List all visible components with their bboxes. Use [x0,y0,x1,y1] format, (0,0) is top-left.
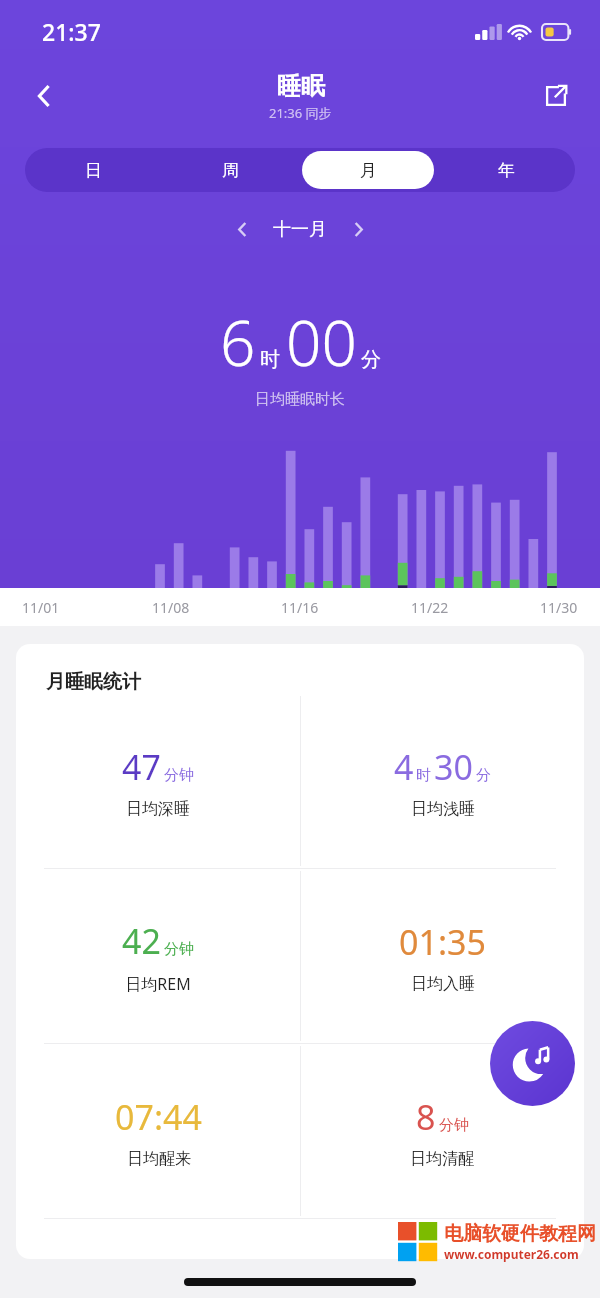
button[interactable]: 01:35 [300,869,584,1043]
button[interactable]: 日 [28,151,159,189]
staticText: 11/30 [540,598,578,617]
staticText: 21:36 同步 [269,104,332,122]
button[interactable]: 42 [16,869,300,1043]
button[interactable]: 月 [302,151,434,189]
staticText: 01:35 [399,919,486,965]
staticText: 11/01 [22,598,60,617]
staticText: 分钟 [439,1116,469,1135]
staticText: 日 [85,160,102,181]
button[interactable]: 07:44 [16,1044,300,1218]
button[interactable]: Sleep music [490,1021,575,1106]
staticText: 月睡眠统计 [46,670,141,694]
button[interactable]: Share [532,72,580,120]
staticText: 月 [360,160,377,181]
staticText: 分 [476,766,491,785]
staticText: 47 [122,744,161,790]
staticText: 十一月 [273,218,327,241]
staticText: 时 [416,766,431,785]
staticText: 日均入睡 [411,974,475,994]
staticText: 时 [260,347,280,372]
button[interactable]: Previous month [223,210,261,248]
button[interactable]: 年 [440,151,572,189]
staticText: 年 [498,160,515,181]
button[interactable]: 4 [300,694,584,868]
staticText: 日均深睡 [126,799,190,819]
staticText: 8 [416,1094,436,1140]
staticText: 42 [122,918,161,964]
staticText: 30 [434,744,473,790]
button[interactable]: 周 [165,151,296,189]
staticText: 日均睡眠时长 [255,390,345,409]
staticText: 日均醒来 [127,1149,191,1169]
staticText: 分钟 [164,940,194,959]
staticText: 日均浅睡 [411,799,475,819]
staticText: 日均REM [125,973,191,995]
button[interactable]: 47 [16,694,300,868]
staticText: 日均清醒 [410,1149,474,1169]
staticText: 11/22 [411,598,449,617]
staticText: 分 [361,347,381,372]
staticText: 分钟 [164,766,194,785]
staticText: 4 [394,744,414,790]
staticText: 11/08 [152,598,190,617]
staticText: 睡眠 [277,71,325,101]
staticText: 07:44 [115,1094,202,1140]
button[interactable]: 8 [300,1044,584,1218]
button[interactable]: Back [20,71,70,121]
staticText: 11/16 [281,598,319,617]
staticText: www.computer26.com [444,1246,579,1262]
staticText: 周 [222,160,239,181]
staticText: 21:37 [42,16,101,47]
staticText: 电脑软硬件教程网 [444,1222,596,1246]
button[interactable]: Next month [339,210,377,248]
staticText: 6 [220,300,256,384]
staticText: 00 [286,300,357,384]
